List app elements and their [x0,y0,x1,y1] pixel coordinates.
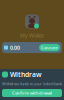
staticText: Confirm withdrawal [12,90,52,96]
button[interactable]: Confirm withdrawal [2,89,62,97]
staticText: Connect [41,45,58,50]
button[interactable]: 0.00 [2,42,62,53]
staticText: Withdraw [10,70,42,79]
staticText: Withdraw funds to your linked bank [2,81,62,86]
staticText: 0.00 [10,44,20,51]
staticText: My Wallet [20,32,44,39]
